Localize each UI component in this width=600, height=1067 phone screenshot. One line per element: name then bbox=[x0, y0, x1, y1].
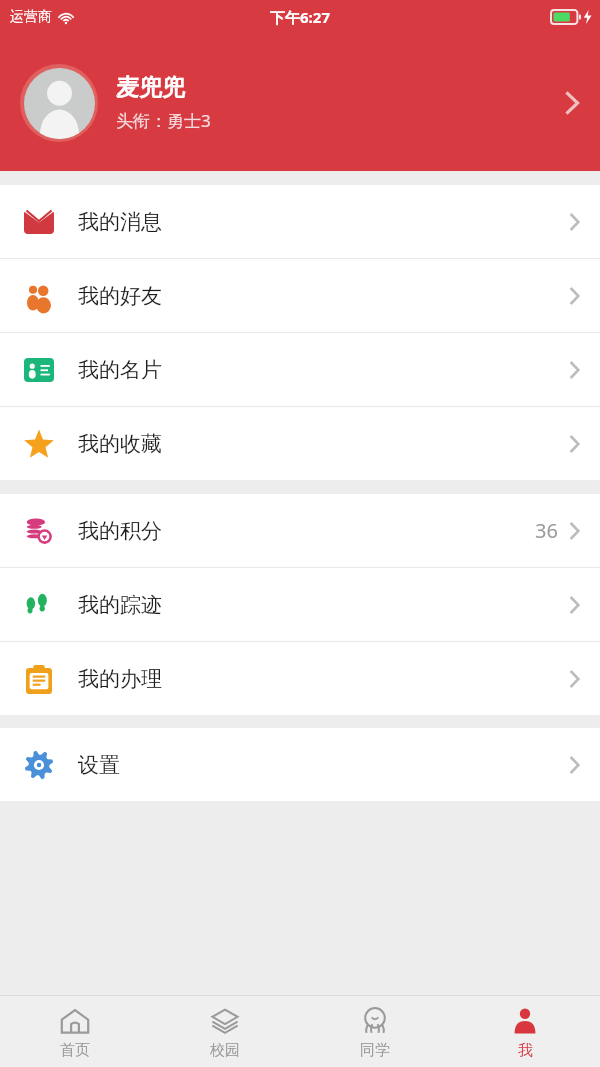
button[interactable]: 我的收藏 bbox=[0, 407, 600, 480]
staticText: 我的好友 bbox=[78, 283, 162, 309]
button[interactable]: 我的踪迹 bbox=[0, 568, 600, 642]
button[interactable]: 麦兜兜 bbox=[0, 34, 600, 171]
button[interactable]: 我的消息 bbox=[0, 185, 600, 259]
button[interactable]: 我的名片 bbox=[0, 333, 600, 407]
button[interactable]: 首页 bbox=[0, 996, 150, 1067]
staticText: 我的消息 bbox=[78, 209, 162, 235]
staticText: 我的办理 bbox=[78, 666, 162, 692]
staticText: 校园 bbox=[210, 1041, 240, 1060]
staticText: 我 bbox=[518, 1041, 533, 1060]
button[interactable]: 我 bbox=[450, 996, 600, 1067]
staticText: 设置 bbox=[78, 752, 120, 778]
staticText: 麦兜兜 bbox=[116, 73, 185, 102]
staticText: 下午6:27 bbox=[270, 7, 330, 27]
button[interactable]: 我的办理 bbox=[0, 642, 600, 715]
button[interactable]: 校园 bbox=[150, 996, 300, 1067]
staticText: 36 bbox=[535, 517, 558, 544]
staticText: 我的踪迹 bbox=[78, 592, 162, 618]
button[interactable]: 同学 bbox=[300, 996, 450, 1067]
staticText: 首页 bbox=[60, 1041, 90, 1060]
staticText: 同学 bbox=[360, 1041, 390, 1060]
button[interactable]: 我的好友 bbox=[0, 259, 600, 333]
staticText: 我的积分 bbox=[78, 518, 162, 544]
staticText: 我的名片 bbox=[78, 357, 162, 383]
staticText: 我的收藏 bbox=[78, 431, 162, 457]
button[interactable]: 我的积分 bbox=[0, 494, 600, 568]
staticText: 运营商 bbox=[10, 8, 52, 26]
staticText: 头衔：勇士3 bbox=[116, 109, 211, 132]
button[interactable]: 设置 bbox=[0, 728, 600, 801]
